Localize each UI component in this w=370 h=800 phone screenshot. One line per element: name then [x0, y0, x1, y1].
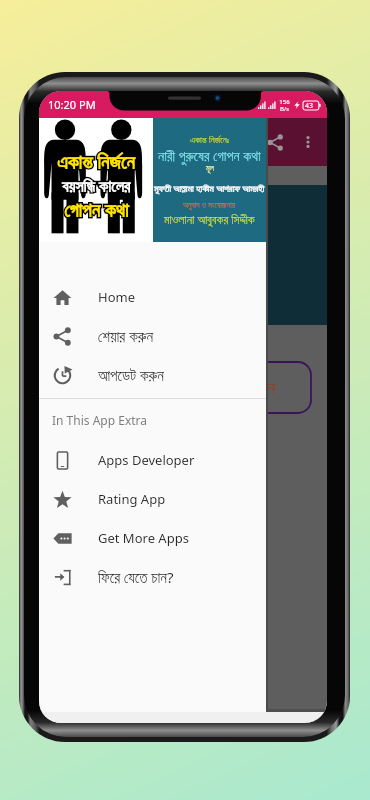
staticText: 10:20 PM: [48, 97, 96, 112]
button[interactable]: Rating App: [39, 479, 266, 518]
staticText: ফিরে যেতে চান?: [98, 567, 174, 587]
staticText: অনুবাদ ও সংযোজনায়: [183, 199, 236, 210]
staticText: Home: [98, 288, 135, 306]
staticText: মূল: [201, 240, 209, 248]
button[interactable]: শেয়ার করুন: [39, 316, 266, 355]
button[interactable]: আপডেট করুন: [39, 355, 266, 394]
button[interactable]: Get More Apps: [39, 518, 266, 557]
staticText: 156 B/s: [279, 98, 290, 112]
button[interactable]: Share: [257, 124, 293, 160]
staticText: মূল: [206, 165, 214, 173]
staticText: মুফতী আল্লামা হাকীম আশরাফ আমরহী: [154, 182, 265, 195]
staticText: মাওলানা আবুবকর সিদ্দীক: [164, 211, 255, 227]
button[interactable]: Home: [39, 277, 266, 316]
staticText: গোপন কথা: [64, 197, 129, 223]
button[interactable]: Apps Developer: [39, 440, 266, 479]
staticText: নারী পুরুষের গোপন কথা: [158, 146, 261, 165]
staticText: একান্ত নির্জনে: [57, 149, 135, 175]
staticText: নারী পুরুষের গোপন কথা: [153, 221, 256, 240]
staticText: একান্ত নির্জনেঃ: [190, 133, 230, 145]
staticText: বয়সন্ধি কালের: [62, 175, 131, 197]
button[interactable]: More options: [293, 127, 323, 157]
staticText: বয়সন্ধি কালের: [62, 175, 131, 197]
staticText: Apps Developer: [98, 451, 195, 469]
staticText: শেয়ার করুন: [98, 326, 154, 346]
staticText: 43: [305, 101, 314, 110]
button[interactable]: ফিরে যেতে চান?: [39, 557, 266, 596]
staticText: In This App Extra: [52, 412, 148, 428]
staticText: গোপন কথা: [64, 197, 129, 223]
staticText: Get More Apps: [98, 529, 189, 547]
staticText: শুরু করুন: [225, 376, 276, 399]
staticText: আপডেট করুন: [98, 365, 164, 385]
staticText: Rating App: [98, 490, 166, 508]
button[interactable]: শুরু করুন: [189, 362, 311, 413]
staticText: একান্ত নির্জনেঃ: [185, 208, 225, 220]
staticText: একান্ত নির্জনে: [57, 149, 135, 175]
